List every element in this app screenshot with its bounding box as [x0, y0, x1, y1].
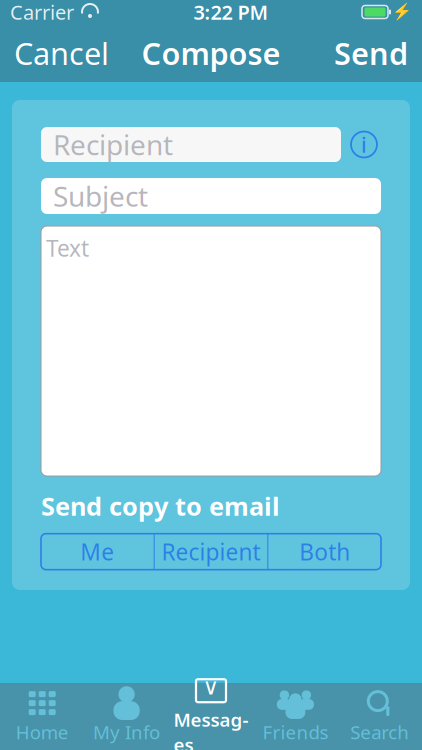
- staticText: Recipient: [53, 126, 173, 163]
- staticText: Me: [80, 537, 114, 567]
- staticText: My Info: [93, 720, 160, 744]
- staticText: Send copy to email: [41, 489, 280, 523]
- staticText: Messages: [173, 707, 248, 750]
- staticText: Friends: [262, 720, 328, 744]
- button[interactable]: Both: [268, 534, 381, 570]
- button[interactable]: ∨: [169, 683, 253, 750]
- button[interactable]: Cancel: [0, 31, 123, 75]
- staticText: Carrier: [10, 0, 74, 25]
- staticText: Search: [350, 720, 409, 744]
- staticText: Both: [299, 537, 350, 567]
- button[interactable]: Recipient: [155, 534, 267, 570]
- staticText: Text: [46, 233, 89, 263]
- staticText: Send: [334, 33, 408, 73]
- staticText: Subject: [53, 177, 148, 215]
- button[interactable]: Friends: [253, 683, 338, 750]
- staticText: Cancel: [14, 33, 109, 73]
- staticText: Recipient: [161, 537, 260, 567]
- button[interactable]: Send: [320, 31, 422, 75]
- staticText: Home: [16, 720, 69, 744]
- button[interactable]: Search: [338, 683, 422, 750]
- button[interactable]: Me: [41, 534, 154, 570]
- staticText: i: [361, 130, 367, 159]
- button[interactable]: Home: [0, 683, 84, 750]
- button[interactable]: Recipient info: [347, 127, 381, 161]
- staticText: ∨: [202, 674, 219, 699]
- staticText: Compose: [141, 33, 280, 73]
- staticText: ⚡: [392, 3, 412, 21]
- button[interactable]: My Info: [84, 683, 169, 750]
- staticText: 3:22 PM: [193, 0, 268, 25]
